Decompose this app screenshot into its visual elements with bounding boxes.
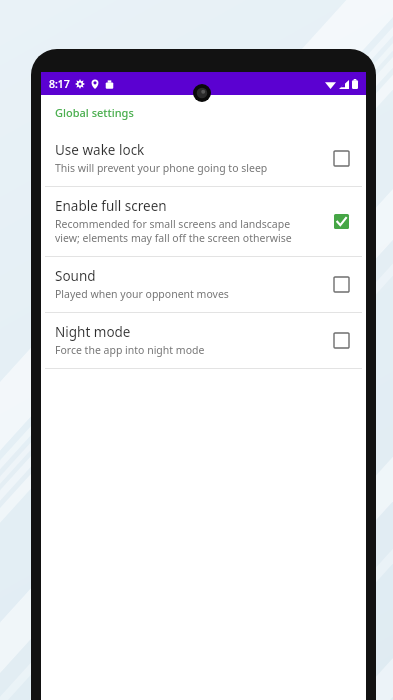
staticText: Sound <box>55 267 96 285</box>
button[interactable]: Unchecked <box>328 271 354 297</box>
staticText: This will prevent your phone going to sl… <box>55 161 268 175</box>
button[interactable]: Sound <box>41 257 366 312</box>
staticText: Use wake lock <box>55 141 145 159</box>
button[interactable]: Enable full screen <box>41 187 366 256</box>
staticText: Force the app into night mode <box>55 343 205 357</box>
staticText: Night mode <box>55 323 131 341</box>
button[interactable]: Use wake lock <box>41 131 366 186</box>
button[interactable]: Unchecked <box>328 327 354 353</box>
button[interactable]: Night mode <box>41 313 366 368</box>
staticText: 8:17 <box>49 77 70 91</box>
staticText: Recommended for small screens and landsc… <box>55 217 292 245</box>
staticText: Global settings <box>55 105 134 120</box>
staticText: Enable full screen <box>55 197 167 215</box>
button[interactable]: Checked <box>328 208 354 234</box>
button[interactable]: Unchecked <box>328 145 354 171</box>
staticText: Played when your opponent moves <box>55 287 229 301</box>
